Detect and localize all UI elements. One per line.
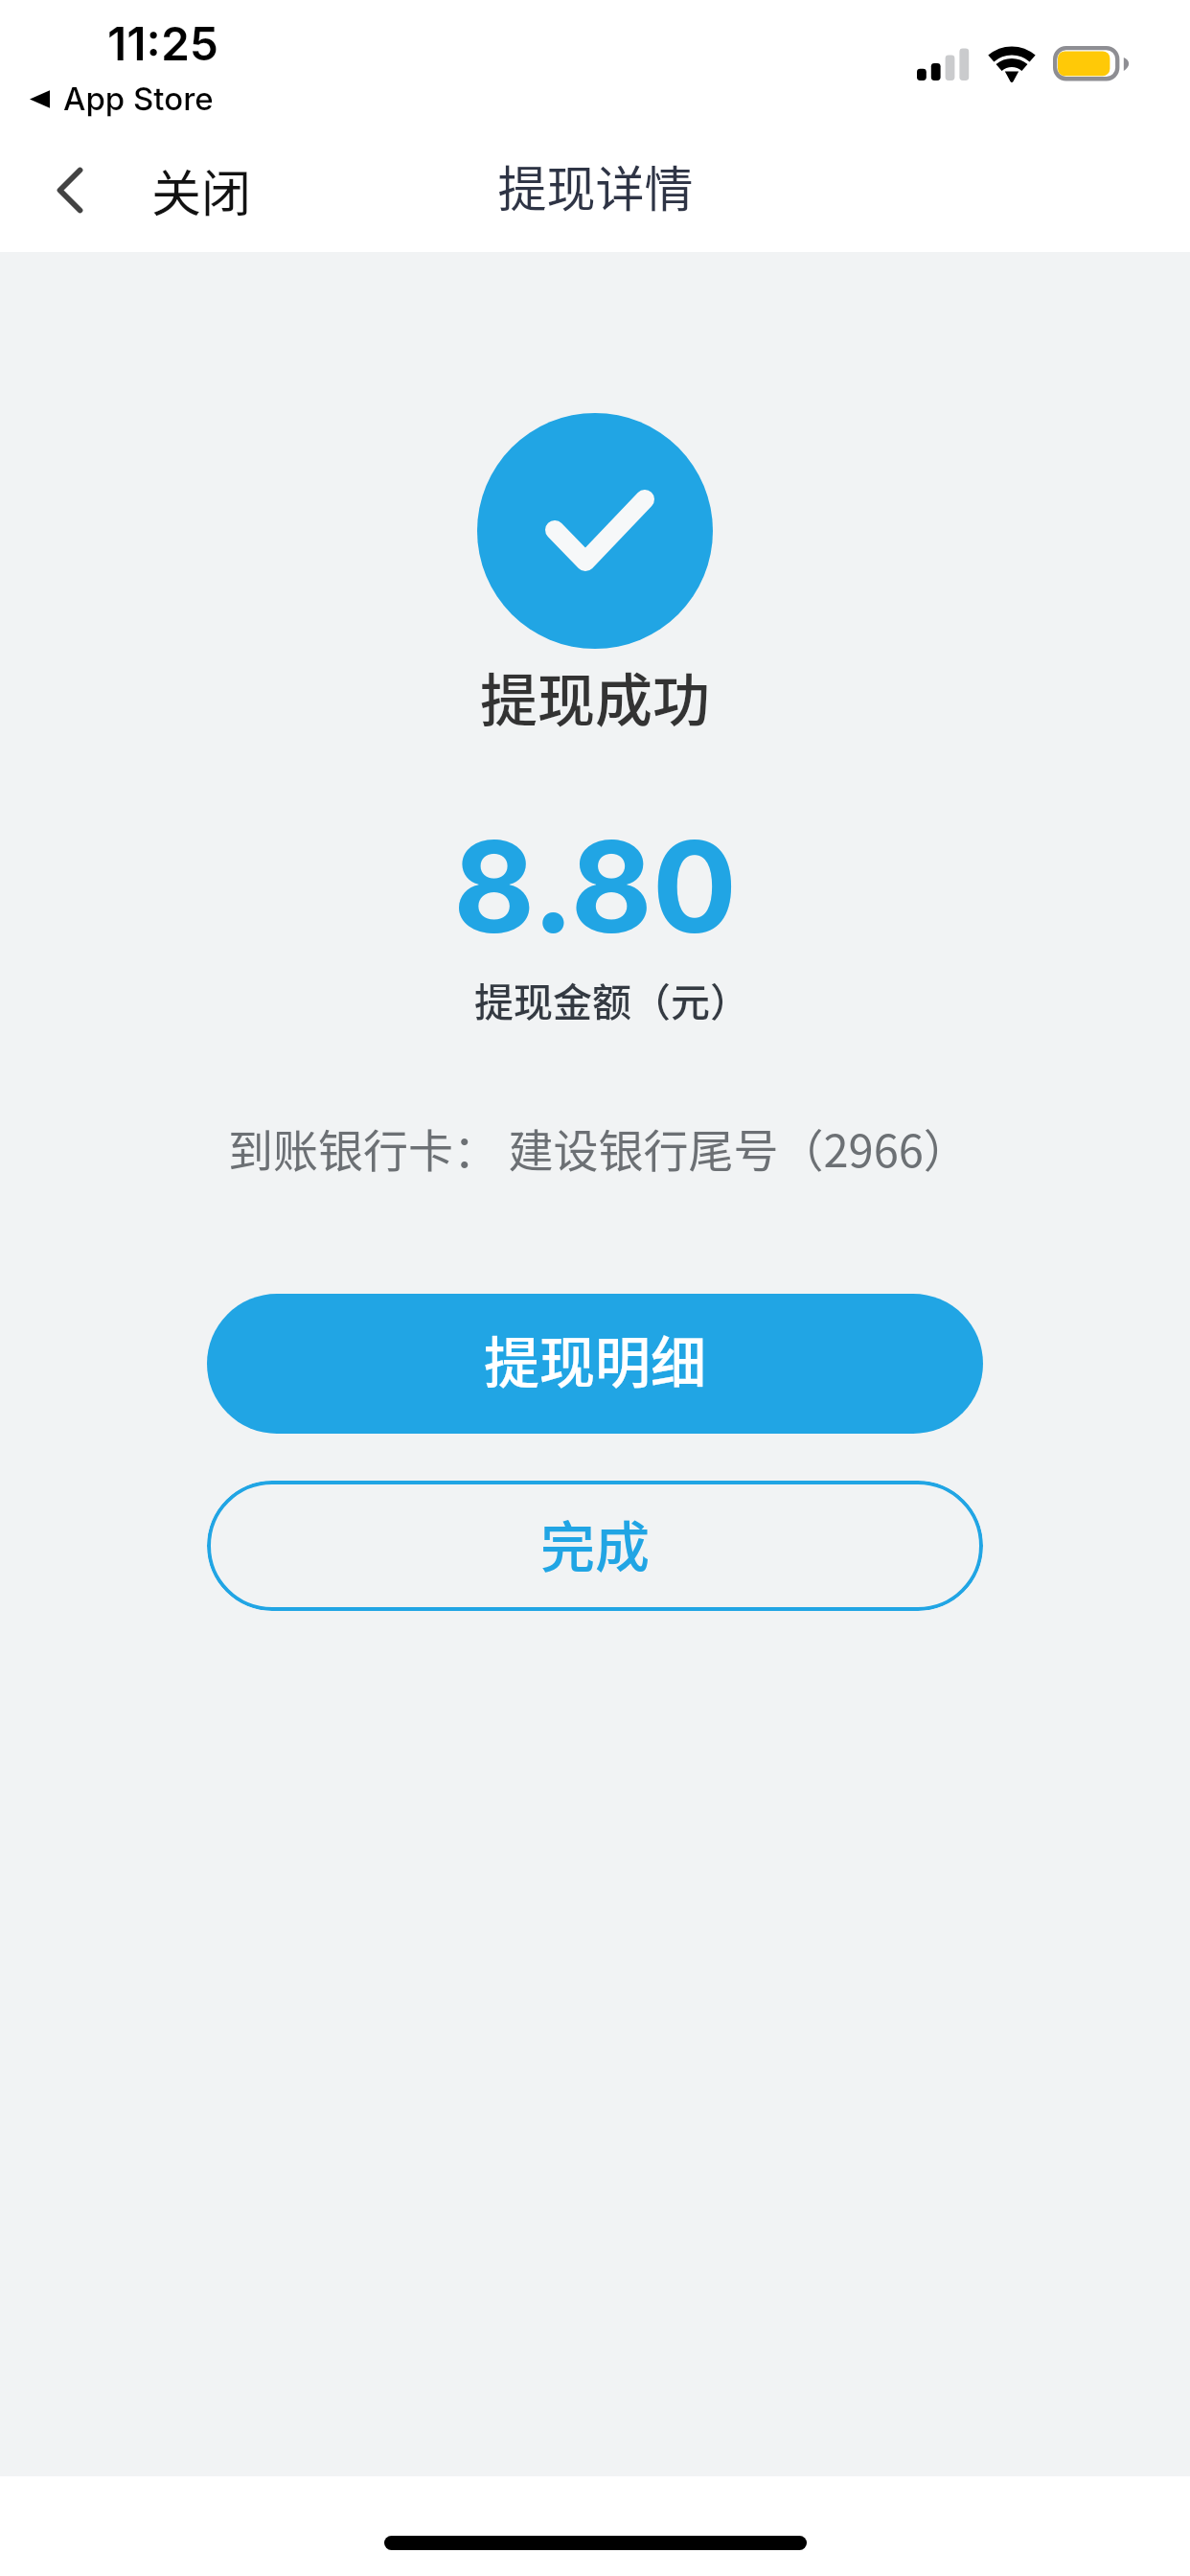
staticText: 完成 [540, 1504, 650, 1583]
button[interactable]: Back [29, 146, 252, 234]
staticText: 关闭 [151, 154, 252, 226]
staticText: 提现金额（元） [474, 971, 749, 1027]
staticText: 8.80 [453, 811, 738, 963]
other: Back [57, 168, 82, 213]
staticText: 到账银行卡： 建设银行尾号（2966） [228, 1115, 969, 1180]
other: App Store [30, 89, 50, 109]
staticText: App Store [63, 80, 214, 118]
staticText: 提现详情 [497, 150, 694, 221]
staticText: 提现明细 [484, 1319, 707, 1399]
button[interactable]: 完成 [207, 1481, 983, 1611]
staticText: 提现成功 [480, 655, 710, 738]
button[interactable]: App Store [30, 80, 214, 118]
button[interactable]: 提现明细 [207, 1294, 983, 1434]
staticText: 11:25 [107, 15, 218, 71]
